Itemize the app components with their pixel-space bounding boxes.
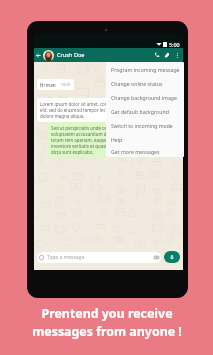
staticText: Change online status (111, 80, 163, 87)
button[interactable]: Call (152, 48, 162, 62)
button[interactable]: Get more messages (106, 146, 184, 157)
button[interactable]: Switch to incoming mode (106, 118, 184, 132)
staticText: messages from anyone ! (32, 323, 182, 340)
button[interactable]: Get default background (106, 104, 184, 118)
staticText: Change background image (111, 94, 177, 101)
button[interactable]: Type a message (39, 252, 159, 263)
staticText: Help (111, 136, 123, 143)
staticText: Sed ut perspiciatis unde omnis iste natu… (51, 125, 146, 155)
staticText: Get default background (111, 108, 169, 115)
staticText: Program incoming message (111, 66, 180, 73)
button[interactable]: Lorem ipsum dolor sit amet, consectetur … (37, 98, 159, 122)
button[interactable]: More options (172, 48, 183, 62)
staticText: Switch to incoming mode (111, 122, 173, 129)
button[interactable]: Change online status (106, 76, 184, 90)
staticText: Get more messages (111, 148, 160, 155)
button[interactable]: Sed ut perspiciatis unde omnis iste natu… (48, 122, 149, 158)
button[interactable]: Change background image (106, 90, 184, 104)
button[interactable]: Record voice message (164, 251, 180, 263)
button[interactable]: Hi man (37, 79, 74, 90)
button[interactable]: Back (34, 48, 43, 62)
staticText: 5:00 (169, 41, 180, 47)
button[interactable]: Attach (162, 48, 172, 62)
button[interactable]: Program incoming message (106, 62, 184, 76)
button[interactable]: Help (106, 132, 184, 146)
staticText: 13:35 (61, 82, 71, 87)
staticText: Crush Doe (57, 51, 85, 59)
staticText: Type a message (47, 254, 85, 261)
staticText: Prentend you receive (41, 305, 173, 322)
staticText: Hi man (40, 82, 56, 88)
staticText: Lorem ipsum dolor sit amet, consectetur … (40, 101, 147, 119)
